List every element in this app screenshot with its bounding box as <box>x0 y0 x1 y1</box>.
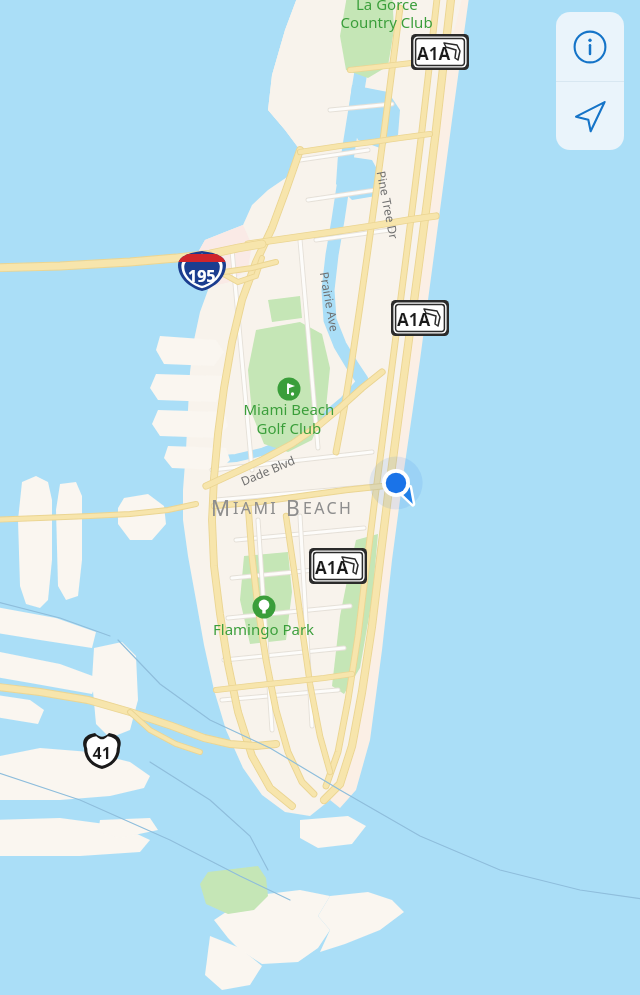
button[interactable]: Map information <box>556 12 624 81</box>
button[interactable]: Show current location <box>556 82 624 150</box>
